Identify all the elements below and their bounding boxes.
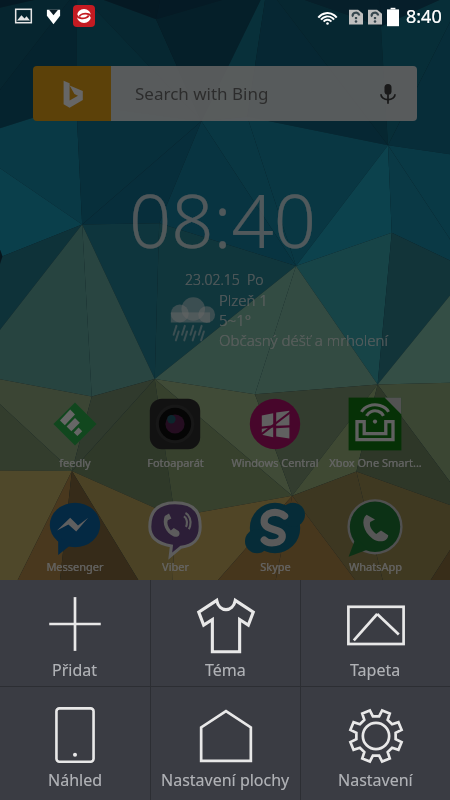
staticText: Fotoaparát — [147, 455, 204, 470]
button[interactable]: feedly — [25, 394, 125, 470]
staticText: Tapeta — [350, 659, 401, 681]
staticText: Search with Bing — [135, 82, 269, 105]
staticText: 23.02.15 Po — [185, 270, 264, 289]
staticText: Viber — [162, 559, 189, 574]
staticText: 5~1° — [219, 310, 252, 330]
staticText: Skype — [260, 559, 291, 574]
button[interactable]: Viber — [125, 498, 225, 574]
button[interactable]: Messenger — [25, 498, 125, 574]
button[interactable]: Náhled — [0, 687, 150, 800]
staticText: Xbox One Smart... — [329, 455, 422, 470]
staticText: feedly — [59, 455, 91, 470]
button[interactable]: Fotoaparát — [125, 394, 225, 470]
button[interactable]: WhatsApp — [325, 498, 425, 574]
staticText: Plzeň 1 — [219, 290, 268, 310]
staticText: 8:40 — [406, 4, 442, 29]
button[interactable]: Nastavení — [301, 687, 450, 800]
staticText: WhatsApp — [349, 559, 402, 574]
staticText: Náhled — [48, 769, 103, 791]
button[interactable]: Skype — [225, 498, 325, 574]
staticText: Windows Central — [231, 455, 319, 470]
staticText: Téma — [205, 659, 246, 681]
button[interactable]: Téma — [151, 580, 300, 686]
staticText: Messenger — [46, 559, 104, 574]
button[interactable]: Tapeta — [301, 580, 450, 686]
staticText: 08:40 — [129, 169, 317, 270]
button[interactable]: Search with Bing — [33, 66, 417, 121]
button[interactable]: Xbox One Smart... — [325, 394, 425, 470]
button[interactable]: Windows Central — [225, 394, 325, 470]
button[interactable]: Nastavení plochy — [151, 687, 300, 800]
staticText: Nastavení — [338, 769, 413, 791]
staticText: Přidat — [52, 659, 98, 681]
staticText: Občasný déšť a mrholení — [219, 330, 389, 350]
staticText: Nastavení plochy — [161, 769, 290, 791]
button[interactable]: Přidat — [0, 580, 150, 686]
